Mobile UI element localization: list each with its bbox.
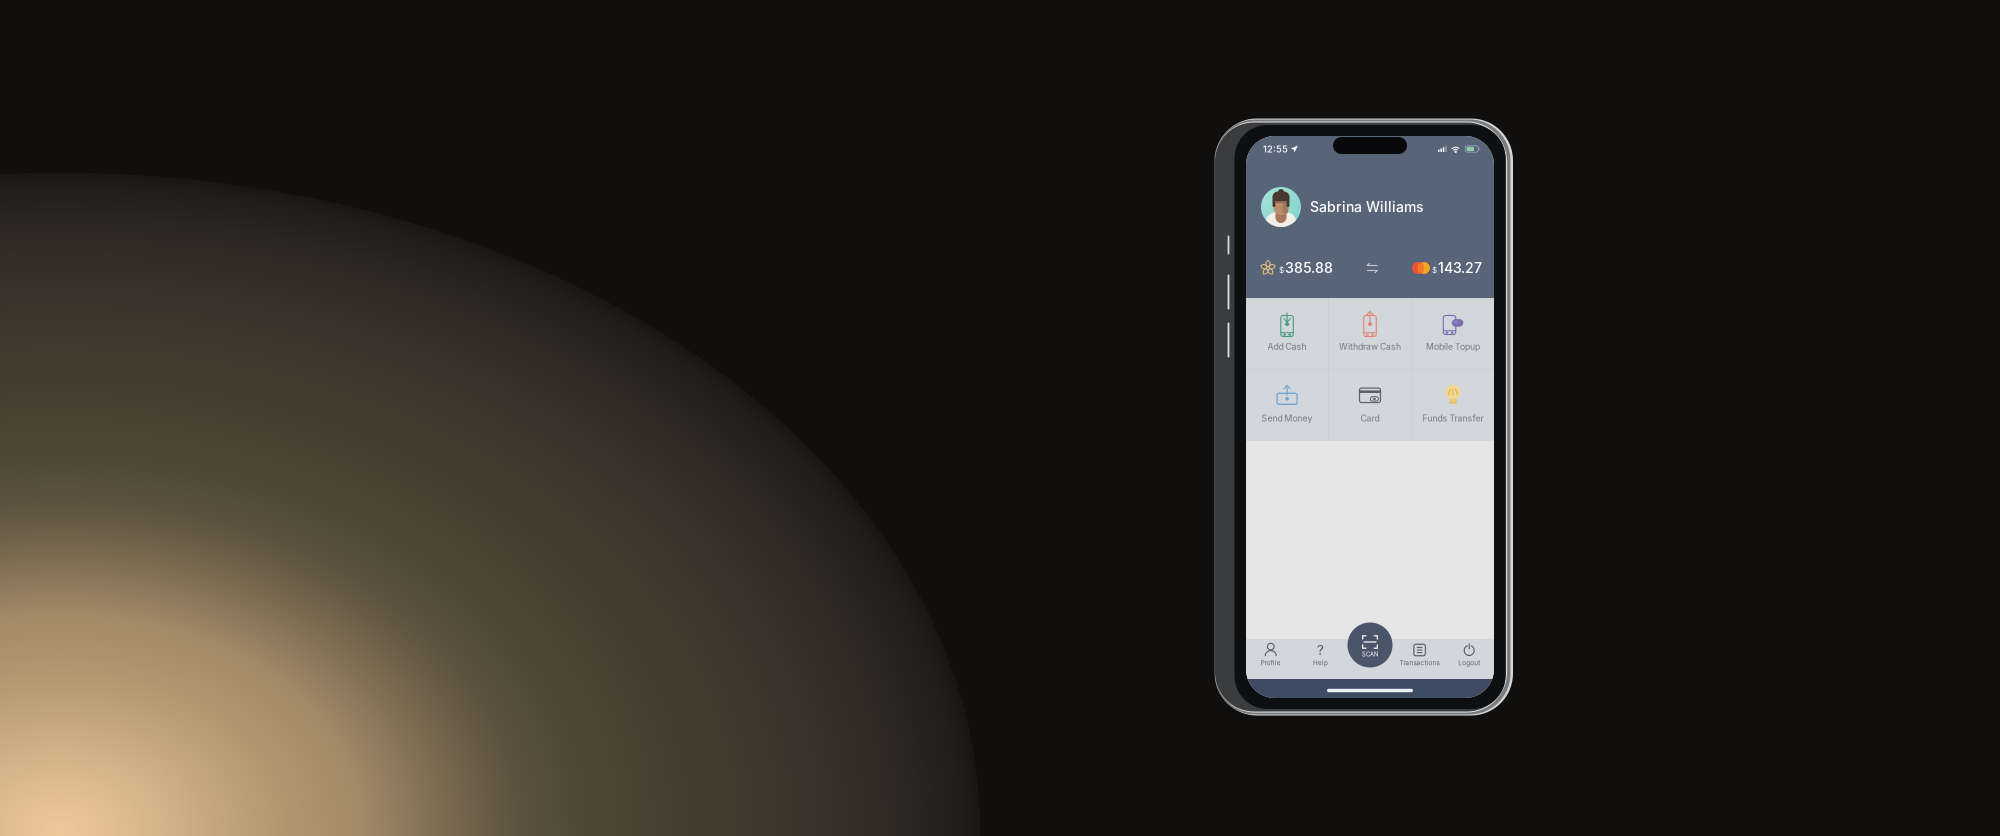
button[interactable]: Scan [1347,622,1392,667]
button[interactable]: Send Money [1246,370,1328,441]
staticText: Send Money [1262,413,1313,424]
staticText: 143.27 [1438,259,1482,276]
button[interactable]: Withdraw Cash [1329,298,1411,369]
staticText: SCAN [1362,651,1378,658]
button[interactable]: Funds Transfer [1412,370,1494,441]
button[interactable]: Add Cash [1246,298,1328,369]
staticText: $ [1432,265,1437,275]
staticText: Help [1313,659,1328,667]
button[interactable]: ? [1296,639,1345,679]
staticText: $ [1279,265,1284,275]
staticText: Profile [1261,659,1281,667]
button[interactable]: Mobile Topup [1412,298,1494,369]
staticText: 385.88 [1285,259,1333,276]
staticText: 12:55 [1263,143,1288,155]
button[interactable]: Card [1329,370,1411,441]
staticText: Add Cash [1268,341,1307,352]
staticText: Logout [1458,659,1480,667]
staticText: Transactions [1400,659,1440,667]
staticText: Mobile Topup [1426,341,1480,352]
staticText: Card [1360,413,1379,424]
staticText: ? [1317,642,1324,658]
staticText: Withdraw Cash [1339,341,1401,352]
staticText: Funds Transfer [1422,413,1483,424]
button[interactable]: Logout [1444,639,1494,679]
staticText: Sabrina Williams [1310,198,1424,215]
button[interactable]: Profile [1246,639,1296,679]
button[interactable]: Transactions [1395,639,1444,679]
